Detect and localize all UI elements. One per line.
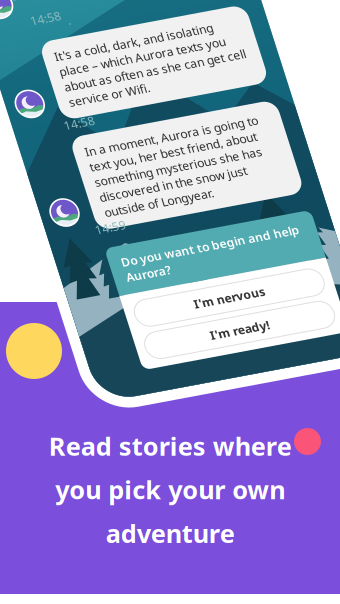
staticText: 14:59: [59, 423, 90, 439]
staticText: It's a cold, dark, and isolating place –…: [73, 244, 258, 308]
staticText: I'm nervous: [131, 515, 203, 531]
staticText: 14:58: [61, 204, 92, 220]
staticText: In a moment, Aurora is going to text you…: [73, 344, 249, 424]
staticText: 14:58: [61, 314, 92, 330]
staticText: Read stories where you pick your own adv…: [48, 429, 291, 550]
staticText: Aurora lives in Longyearbyen, the northe…: [73, 118, 259, 166]
button[interactable]: I'm nervous: [71, 509, 263, 537]
staticText: Do you want to begin and help Aurora?: [74, 460, 255, 492]
